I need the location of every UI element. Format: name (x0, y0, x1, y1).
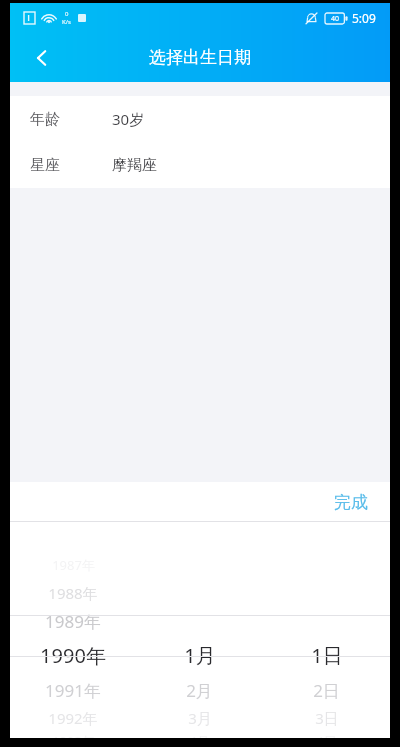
button[interactable]: 1日 (263, 522, 390, 738)
staticText: 1987年 (52, 556, 95, 574)
staticText: 5:09 (352, 10, 376, 26)
button[interactable]: 完成 (312, 482, 390, 522)
staticText: 3月 (188, 708, 212, 728)
staticText: 选择出生日期 (149, 47, 251, 68)
button[interactable]: 1月 (136, 522, 263, 738)
staticText: 年龄 (30, 110, 60, 129)
staticText: 星座 (30, 156, 60, 175)
staticText: K/s (62, 18, 71, 26)
staticText: 40 (331, 14, 340, 24)
staticText: 2月 (186, 679, 213, 702)
staticText: 1988年 (48, 583, 98, 603)
staticText: 1990年 (40, 642, 106, 669)
staticText: 1989年 (45, 610, 101, 633)
staticText: 3日 (315, 708, 339, 728)
staticText: 1日 (311, 642, 343, 669)
staticText: 1991年 (45, 679, 101, 702)
staticText: 1992年 (48, 708, 98, 728)
staticText: 摩羯座 (112, 156, 157, 175)
staticText: 完成 (334, 492, 368, 513)
staticText: 0 (65, 10, 69, 18)
button[interactable]: 星座 (10, 142, 390, 188)
button[interactable]: 年龄 (10, 96, 390, 142)
button[interactable]: 1987年 (10, 522, 136, 738)
button[interactable]: Back (20, 36, 64, 80)
staticText: 2日 (313, 679, 340, 702)
staticText: 1月 (184, 642, 216, 669)
staticText: 30岁 (112, 109, 145, 129)
